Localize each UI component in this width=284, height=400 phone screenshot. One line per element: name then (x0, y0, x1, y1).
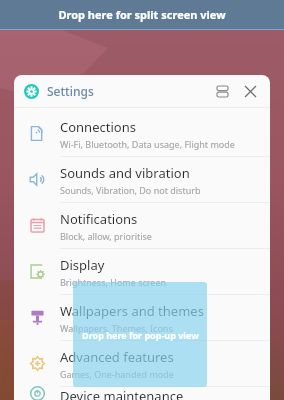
staticText: Notifications (60, 210, 138, 228)
button[interactable]: Split screen (210, 79, 234, 103)
staticText: Settings (47, 83, 94, 99)
staticText: Brightness, Home screen (60, 276, 167, 288)
staticText: Sounds and vibration (60, 164, 190, 182)
button[interactable]: Wallpapers and themes (14, 295, 270, 341)
staticText: Device maintenance (60, 387, 184, 400)
button[interactable]: Drop here for pop-up view (73, 282, 207, 387)
button[interactable]: Drop here for split screen view (0, 0, 284, 29)
staticText: Drop here for split screen view (58, 7, 226, 22)
staticText: Wallpapers and themes (60, 302, 204, 320)
button[interactable]: Device maintenance (14, 387, 270, 400)
staticText: Display (60, 256, 105, 274)
button[interactable]: Advanced features (14, 341, 270, 387)
staticText: Block, allow, prioritise (60, 230, 152, 242)
staticText: Sounds, Vibration, Do not disturb (60, 184, 201, 196)
staticText: Games, One-handed mode (60, 368, 174, 380)
staticText: Wallpapers, Themes, Icons (60, 322, 173, 334)
button[interactable]: Display (14, 249, 270, 295)
staticText: Drop here for pop-up view (82, 329, 199, 341)
button[interactable]: Sounds and vibration (14, 157, 270, 203)
staticText: Advanced features (60, 348, 174, 366)
button[interactable]: Notifications (14, 203, 270, 249)
button[interactable]: Close (238, 79, 262, 103)
button[interactable]: Connections (14, 111, 270, 157)
staticText: Wi-Fi, Bluetooth, Data usage, Flight mod… (60, 138, 235, 150)
staticText: Connections (60, 118, 136, 136)
